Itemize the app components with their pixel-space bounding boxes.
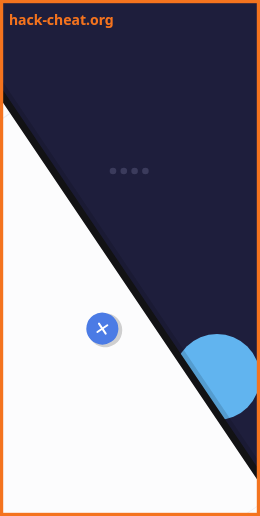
button[interactable]: Calendar app promotional screen	[0, 0, 260, 516]
